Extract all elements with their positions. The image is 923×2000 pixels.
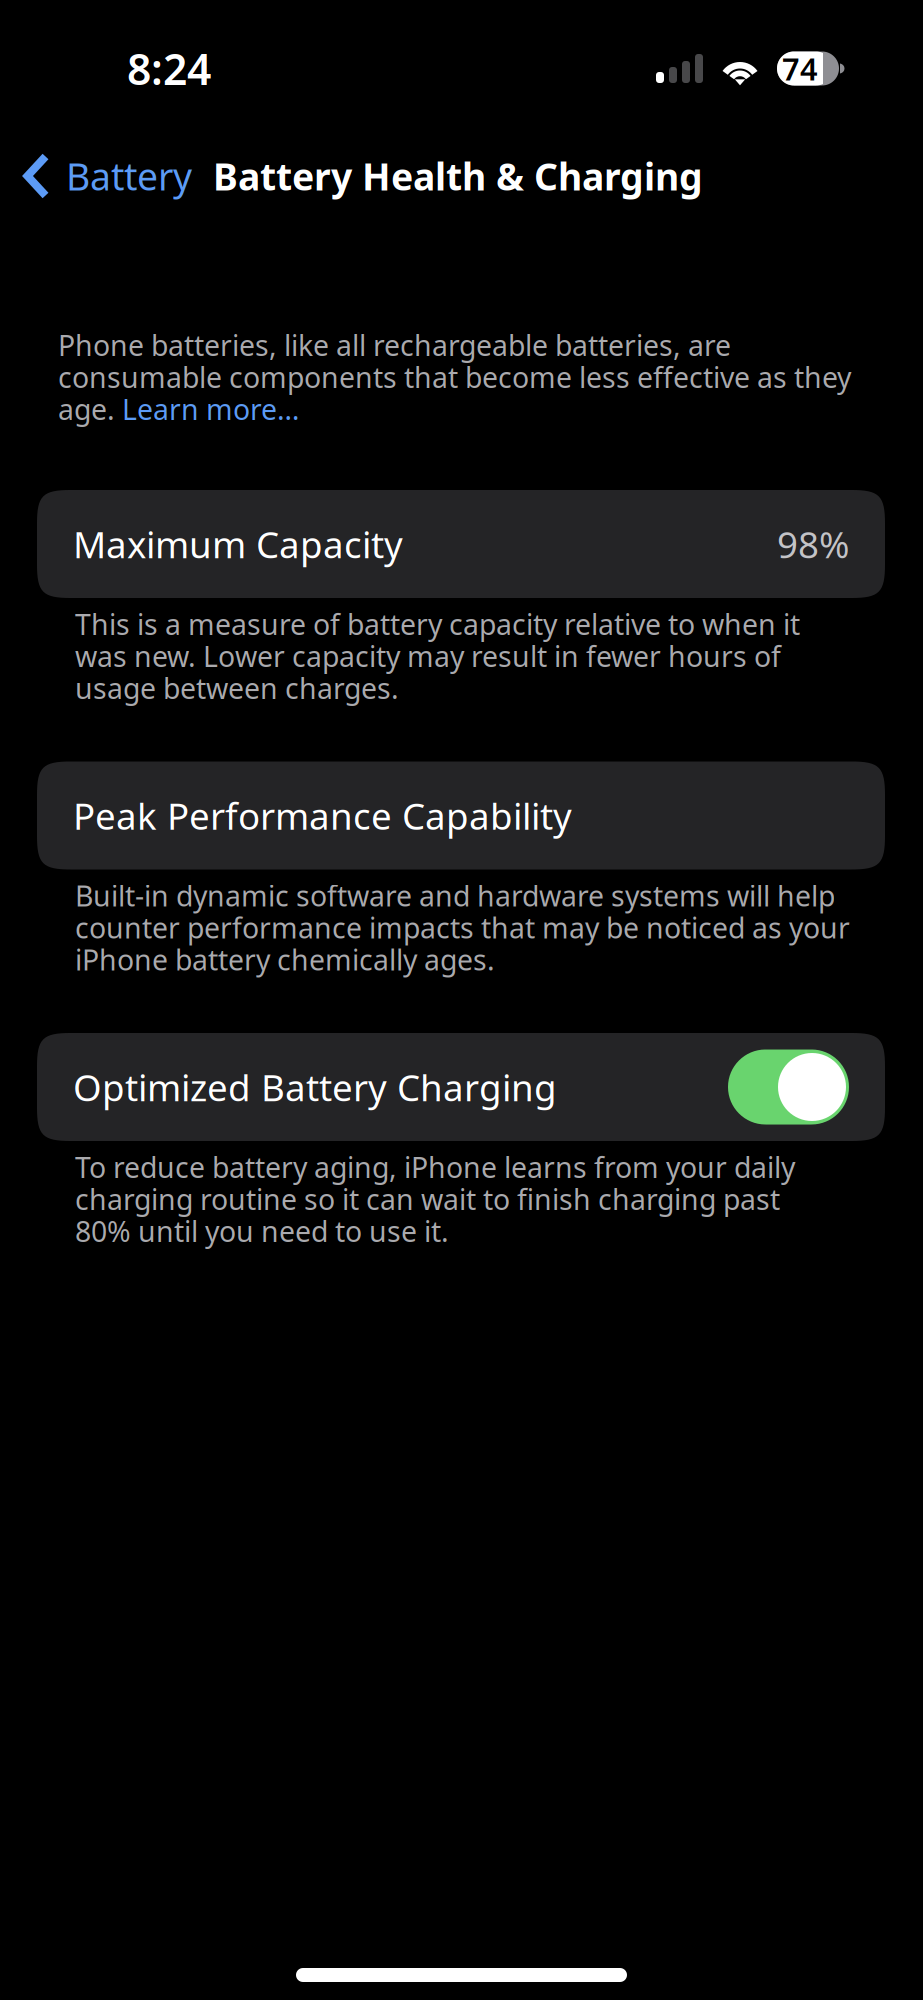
- staticText: Optimized Battery Charging: [73, 1062, 557, 1112]
- staticText: Battery: [66, 151, 192, 201]
- staticText: counter performance impacts that may be …: [75, 908, 850, 947]
- staticText: This is a measure of battery capacity re…: [75, 605, 800, 643]
- staticText: usage between charges.: [75, 669, 399, 707]
- staticText: age.: [58, 390, 122, 428]
- staticText: To reduce battery aging, iPhone learns f…: [75, 1148, 795, 1186]
- button[interactable]: Learn more…: [122, 390, 299, 428]
- button[interactable]: Maximum Capacity: [37, 490, 885, 598]
- staticText: Peak Performance Capability: [73, 790, 572, 840]
- staticText: consumable components that become less e…: [58, 358, 851, 396]
- button[interactable]: Optimized Battery Charging: [37, 1033, 885, 1141]
- button[interactable]: Peak Performance Capability: [37, 761, 885, 869]
- staticText: Learn more…: [122, 390, 299, 428]
- staticText: 74: [782, 48, 818, 89]
- staticText: Built-in dynamic software and hardware s…: [75, 876, 835, 915]
- staticText: iPhone battery chemically ages.: [75, 940, 495, 979]
- staticText: Maximum Capacity: [73, 519, 403, 569]
- staticText: 8:24: [127, 40, 211, 97]
- button[interactable]: Battery: [0, 143, 213, 209]
- staticText: charging routine so it can wait to finis…: [75, 1180, 780, 1218]
- staticText: 98%: [777, 519, 849, 569]
- staticText: Battery Health & Charging: [213, 151, 703, 201]
- staticText: 80% until you need to use it.: [75, 1212, 449, 1250]
- staticText: Phone batteries, like all rechargeable b…: [58, 326, 731, 364]
- staticText: was new. Lower capacity may result in fe…: [75, 637, 781, 675]
